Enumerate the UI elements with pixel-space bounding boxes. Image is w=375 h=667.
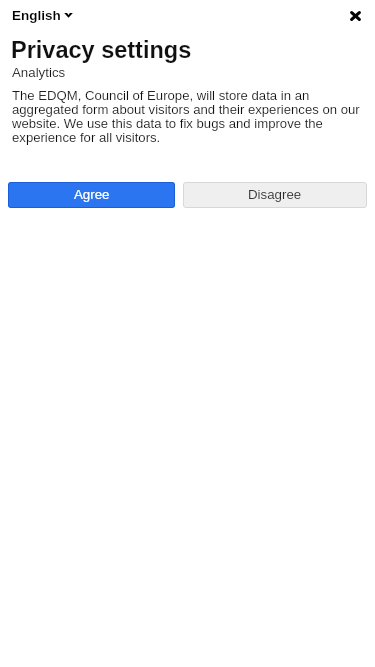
button[interactable]: Disagree — [183, 182, 367, 208]
staticText: Agree — [74, 187, 110, 202]
button[interactable]: English — [11, 6, 75, 24]
staticText: The EDQM, Council of Europe, will store … — [12, 88, 364, 145]
staticText: English — [12, 8, 61, 23]
staticText: Analytics — [12, 65, 66, 80]
staticText: Privacy settings — [11, 37, 192, 63]
staticText: Disagree — [248, 187, 302, 202]
button[interactable]: Agree — [8, 182, 175, 208]
button[interactable]: Close — [344, 4, 367, 27]
